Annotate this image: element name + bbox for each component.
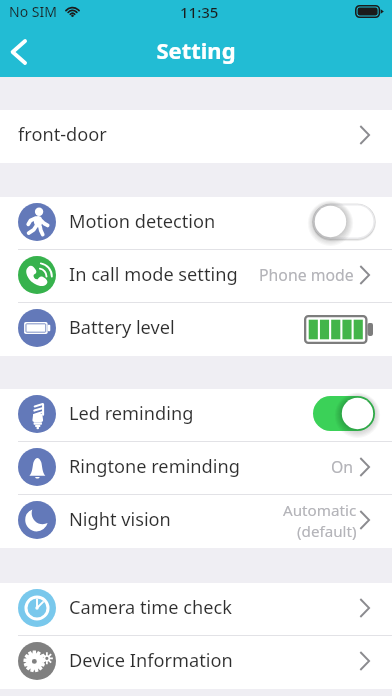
button[interactable]: Led reminding <box>0 389 392 442</box>
button[interactable]: Device Information <box>0 636 392 689</box>
button[interactable]: Night vision <box>0 495 392 548</box>
staticText: Device Information <box>69 648 233 673</box>
staticText: front-door <box>18 122 107 147</box>
staticText: Led reminding <box>69 401 194 426</box>
staticText: In call mode setting <box>69 262 238 287</box>
staticText: Night vision <box>69 507 171 532</box>
staticText: (default) <box>297 521 357 542</box>
button[interactable]: Ringtone reminding <box>0 442 392 495</box>
button[interactable]: front-door <box>0 110 392 163</box>
button[interactable]: In call mode setting <box>0 250 392 303</box>
staticText: Automatic <box>283 500 357 521</box>
button[interactable]: Battery level <box>0 303 392 356</box>
button[interactable]: Back <box>0 23 46 77</box>
staticText: Phone mode <box>259 264 354 286</box>
staticText: 11:35 <box>180 2 219 22</box>
staticText: Motion detection <box>69 209 216 234</box>
staticText: On <box>331 456 354 478</box>
button[interactable]: Camera time check <box>0 583 392 636</box>
button[interactable]: Motion detection <box>0 197 392 250</box>
staticText: Ringtone reminding <box>69 454 240 479</box>
staticText: Camera time check <box>69 595 232 620</box>
staticText: Setting <box>156 35 236 65</box>
staticText: Battery level <box>69 315 175 340</box>
button[interactable]: Switch off <box>313 204 375 239</box>
button[interactable]: Switch on <box>313 396 375 431</box>
staticText: No SIM <box>9 2 57 21</box>
